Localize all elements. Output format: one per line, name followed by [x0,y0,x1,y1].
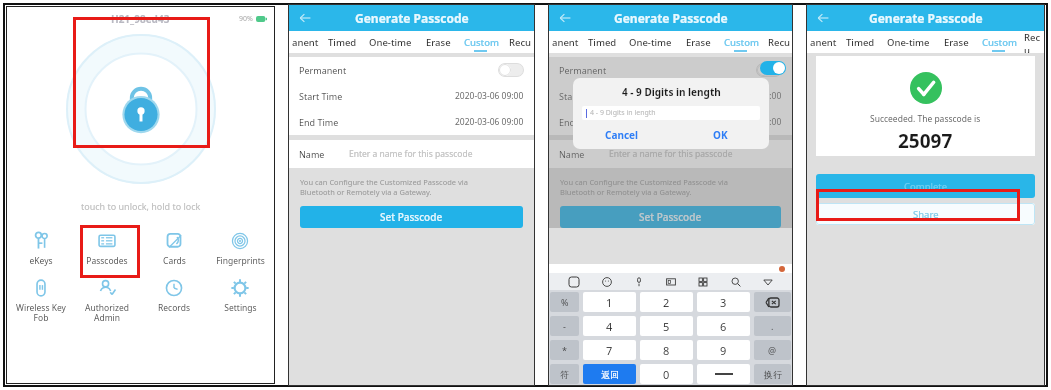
button[interactable]: key4 [696,275,709,288]
button[interactable]: @ [754,340,791,360]
button[interactable]: 8 [640,340,693,360]
button[interactable]: key6 [761,275,774,288]
button[interactable]: Settings [209,279,271,314]
staticText: - [563,320,566,332]
button[interactable]: * [550,340,579,360]
staticText: Generate Passcode [869,10,983,26]
button[interactable]: Timed [840,31,880,53]
staticText: Records [158,302,190,314]
button[interactable]: Permanent toggle [498,63,524,77]
button[interactable]: 符 [550,364,579,384]
staticText: Cancel [605,128,639,142]
staticText: Complete [904,180,948,193]
button[interactable]: Passcodes [76,232,138,267]
staticText: You can Configure the Customized Passcod… [560,177,728,197]
button[interactable]: Set Passcode [300,206,523,228]
button[interactable]: 7 [583,340,636,360]
button[interactable]: Complete [816,174,1035,198]
button[interactable]: Cancel [573,128,671,142]
staticText: Recu [1024,31,1044,53]
button[interactable]: anent [807,31,840,53]
staticText: Name [559,148,585,160]
button[interactable]: Back [813,8,833,28]
button[interactable]: Share [816,203,1035,225]
button[interactable]: Cards [143,232,205,267]
button[interactable]: key1 [600,275,613,288]
staticText: 4 - 9 Digits in length [590,108,656,118]
staticText: Passcodes [86,255,128,267]
staticText: Recu [509,36,532,49]
staticText: 2020-03-06 09:00 [455,116,524,128]
staticText: 9 [720,343,727,358]
button[interactable]: key2 [632,275,645,288]
staticText: 90% [239,14,253,24]
button[interactable]: 6 [697,316,750,336]
button[interactable]: Custom [975,31,1024,53]
staticText: Custom [464,36,500,49]
staticText: Timed [588,36,617,49]
staticText: Settings [224,302,257,314]
staticText: Name [299,148,325,160]
button[interactable]: Erase [419,31,457,53]
button[interactable]: Recu [506,31,534,53]
button[interactable]: Permanent [299,57,524,83]
button[interactable]: End Time [559,109,782,135]
staticText: OK [713,128,728,142]
button[interactable]: - [550,316,579,336]
button[interactable]: Back [295,8,315,28]
button[interactable]: 1 [583,292,636,312]
button[interactable]: Start Time [559,83,782,109]
button[interactable]: 5 [640,316,693,336]
button[interactable]: Timed [582,31,622,53]
button[interactable]: key3 [664,275,677,288]
staticText: 返回 [601,369,619,380]
button[interactable]: Wireless Key Fob [10,279,72,323]
button[interactable]: 0 [640,364,693,384]
staticText: eKeys [29,255,53,267]
staticText: Succeeded. The passcode is [870,113,981,125]
button[interactable]: One-time [622,31,679,53]
button[interactable]: Timed [322,31,362,53]
button[interactable]: Records [143,279,205,314]
staticText: Generate Passcode [614,10,728,26]
staticText: 2 [663,295,670,310]
button[interactable]: Permanent [559,57,782,83]
button[interactable]: Authorized Admin [76,279,138,323]
button[interactable]: Recu [1024,31,1044,53]
button[interactable] [697,364,750,384]
button[interactable]: Custom [457,31,506,53]
button[interactable]: . [754,316,791,336]
staticText: 4 [606,319,613,334]
button[interactable]: 4 [583,316,636,336]
button[interactable]: key0 [567,275,580,288]
button[interactable]: anent [289,31,322,53]
button[interactable]: Recu [766,31,792,53]
button[interactable]: Custom [717,31,766,53]
button[interactable]: Erase [679,31,717,53]
button[interactable]: OK [671,128,769,142]
button[interactable]: End Time [299,109,524,135]
button[interactable]: eKeys [10,232,72,267]
staticText: 25097 [898,128,953,154]
staticText: You can Configure the Customized Passcod… [300,177,468,197]
button[interactable]: Back [555,8,575,28]
button[interactable]: Start Time [299,83,524,109]
button[interactable]: ⌫ [754,292,791,312]
button[interactable]: % [550,292,579,312]
button[interactable]: One-time [880,31,937,53]
button[interactable]: One-time [362,31,419,53]
button[interactable]: Erase [937,31,975,53]
button[interactable]: key5 [729,275,742,288]
button[interactable]: 9 [697,340,750,360]
button[interactable]: 2 [640,292,693,312]
button[interactable]: 返回 [583,364,636,384]
staticText: Enter a name for this passcode [349,148,473,160]
staticText: 2020-03-06 09:00 [455,90,524,102]
button[interactable]: 3 [697,292,750,312]
button[interactable]: Set Passcode [560,206,781,228]
button[interactable]: anent [549,31,582,53]
button[interactable]: Fingerprints [209,232,271,267]
staticText: Set Passcode [380,210,443,224]
button[interactable]: Permanent toggle [756,63,782,77]
button[interactable]: 换行 [754,364,791,384]
